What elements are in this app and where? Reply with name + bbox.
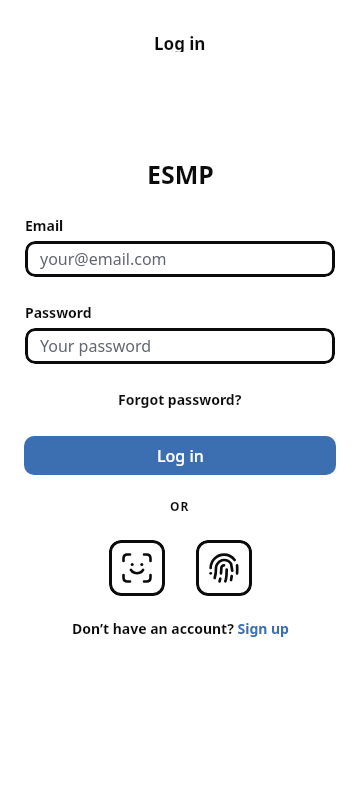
staticText: Password <box>25 303 92 322</box>
button[interactable]: Your password <box>25 328 335 364</box>
staticText: Your password <box>40 335 152 357</box>
button[interactable]: Log in <box>24 436 336 475</box>
staticText: Email <box>25 216 64 235</box>
button[interactable]: your@email.com <box>25 241 335 277</box>
staticText: Log in <box>157 445 204 467</box>
button[interactable]: Don’t have an account? Sign up <box>0 619 360 638</box>
button[interactable] <box>109 540 165 596</box>
staticText: Don’t have an account? Sign up <box>72 619 289 638</box>
staticText: your@email.com <box>40 248 167 270</box>
staticText: Log in <box>154 32 206 52</box>
staticText: OR <box>170 498 190 514</box>
staticText: ESMP <box>147 157 214 191</box>
button[interactable]: Forgot password? <box>118 390 242 409</box>
button[interactable] <box>196 540 252 596</box>
